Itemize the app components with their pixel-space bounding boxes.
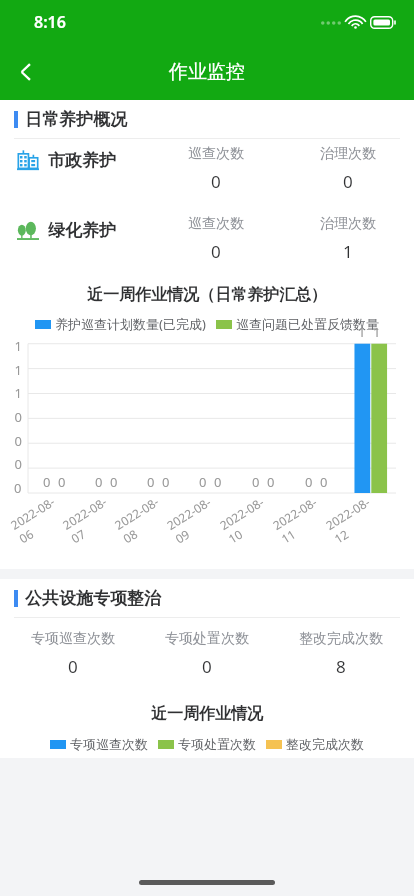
staticText: 2022-08-06 (7, 492, 69, 546)
staticText: 绿化养护 (48, 220, 116, 241)
staticText: 0 (14, 455, 22, 473)
staticText: 0 (202, 655, 212, 678)
staticText: 0 (199, 473, 207, 491)
button[interactable]: 市政养护 (0, 145, 414, 193)
staticText: 0 (214, 473, 222, 491)
staticText: 巡查问题已处置反馈数量 (236, 316, 379, 332)
staticText: 1 (14, 384, 22, 402)
staticText: 8:16 (34, 11, 66, 33)
staticText: 0 (147, 473, 155, 491)
staticText: 2022-08-09 (163, 491, 225, 547)
staticText: 0 (43, 473, 51, 491)
staticText: 0 (162, 473, 170, 491)
staticText: 近一周作业情况 (151, 704, 263, 724)
staticText: 1 (358, 323, 366, 341)
staticText: 0 (68, 655, 78, 678)
staticText: 0 (267, 473, 275, 491)
staticText: 2022-08-10 (216, 491, 278, 547)
button[interactable]: 绿化养护 (0, 215, 414, 263)
staticText: 专项巡查次数 (70, 736, 148, 752)
staticText: 治理次数 (320, 215, 376, 233)
staticText: 公共设施专项整治 (25, 588, 161, 609)
staticText: 0 (14, 479, 22, 497)
staticText: 0 (110, 473, 118, 491)
staticText: 2022-08-12 (322, 491, 384, 547)
staticText: 养护巡查计划数量(已完成) (55, 315, 206, 333)
staticText: 0 (252, 473, 260, 491)
staticText: 1 (14, 361, 22, 379)
staticText: 2022-08-07 (59, 492, 121, 546)
staticText: 2022-08-11 (269, 491, 331, 547)
staticText: 整改完成次数 (299, 630, 383, 648)
staticText: 0 (211, 240, 221, 263)
staticText: 整改完成次数 (286, 736, 364, 752)
staticText: 0 (211, 170, 221, 193)
staticText: 8 (336, 655, 346, 678)
staticText: 巡查次数 (188, 215, 244, 233)
staticText: 1 (14, 337, 22, 355)
staticText: 日常养护概况 (25, 109, 127, 130)
staticText: 作业监控 (169, 60, 245, 84)
staticText: 专项巡查次数 (31, 630, 115, 648)
staticText: 1 (343, 240, 353, 263)
staticText: 0 (58, 473, 66, 491)
staticText: 1 (373, 323, 381, 341)
staticText: 0 (305, 473, 313, 491)
staticText: 0 (14, 432, 22, 450)
staticText: 巡查次数 (188, 145, 244, 163)
staticText: 专项处置次数 (165, 630, 249, 648)
staticText: 专项处置次数 (178, 736, 256, 752)
staticText: 0 (95, 473, 103, 491)
staticText: 市政养护 (48, 150, 116, 171)
staticText: 0 (343, 170, 353, 193)
staticText: 0 (320, 473, 328, 491)
button[interactable]: Back (0, 46, 52, 98)
staticText: 治理次数 (320, 145, 376, 163)
staticText: 2022-08-08 (111, 492, 173, 546)
staticText: 0 (14, 408, 22, 426)
staticText: 近一周作业情况（日常养护汇总） (87, 285, 327, 305)
